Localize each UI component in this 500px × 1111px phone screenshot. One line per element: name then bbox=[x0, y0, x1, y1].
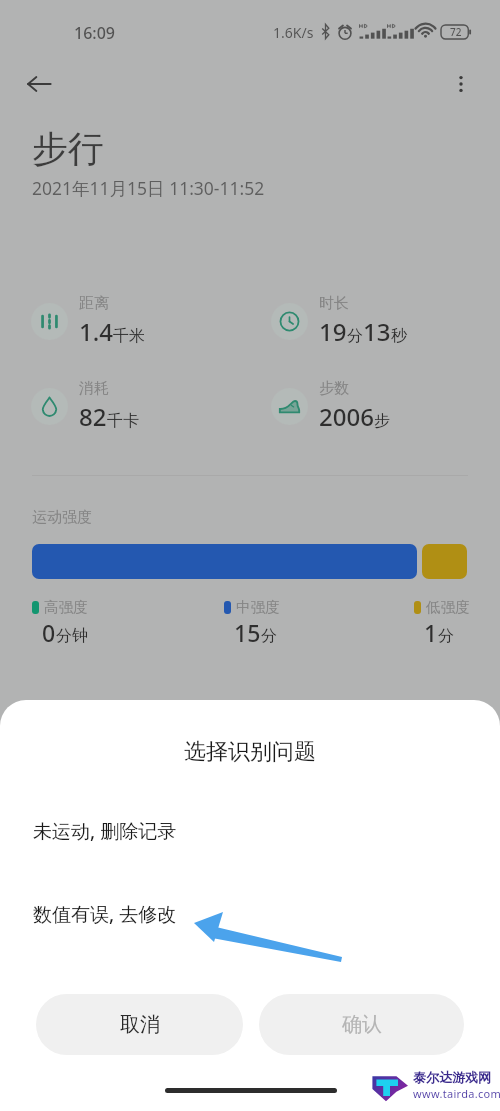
button[interactable]: 步数 bbox=[271, 379, 390, 433]
button[interactable]: 时长 bbox=[271, 294, 407, 348]
staticText: 19 bbox=[319, 315, 347, 348]
staticText: 72 bbox=[450, 25, 462, 39]
staticText: 2006 bbox=[319, 400, 374, 433]
button[interactable]: Back bbox=[16, 61, 62, 107]
staticText: 13 bbox=[363, 315, 391, 348]
staticText: 82 bbox=[79, 400, 107, 433]
staticText: 0 bbox=[42, 617, 56, 648]
staticText: 1.4 bbox=[79, 315, 113, 348]
staticText: 确认 bbox=[342, 1012, 382, 1037]
button[interactable]: 数值有误, 去修改 bbox=[0, 890, 500, 938]
staticText: 高强度 bbox=[44, 598, 88, 616]
staticText: 步 bbox=[374, 411, 390, 431]
staticText: 数值有误, 去修改 bbox=[33, 901, 177, 927]
staticText: 分 bbox=[261, 626, 277, 646]
staticText: 步行 bbox=[32, 126, 104, 171]
staticText: 时长 bbox=[319, 294, 349, 313]
staticText: 千米 bbox=[113, 326, 145, 346]
staticText: 距离 bbox=[79, 294, 109, 313]
staticText: 泰尔达游戏网 bbox=[413, 1069, 491, 1085]
button[interactable]: More options bbox=[438, 61, 484, 107]
button[interactable]: 距离 bbox=[31, 294, 145, 348]
staticText: 分 bbox=[347, 326, 363, 346]
button[interactable]: 取消 bbox=[36, 994, 243, 1055]
button[interactable]: 未运动, 删除记录 bbox=[0, 807, 500, 855]
staticText: 1 bbox=[424, 617, 438, 648]
staticText: 未运动, 删除记录 bbox=[33, 818, 177, 844]
staticText: 取消 bbox=[120, 1012, 160, 1037]
button[interactable]: 确认 bbox=[259, 994, 464, 1055]
staticText: 步数 bbox=[319, 379, 349, 398]
staticText: 16:09 bbox=[74, 22, 115, 44]
staticText: 中强度 bbox=[236, 598, 280, 616]
staticText: www.tairda.com bbox=[413, 1086, 500, 1101]
staticText: 选择识别问题 bbox=[0, 738, 500, 766]
staticText: 1.6K/s bbox=[273, 23, 314, 42]
staticText: 消耗 bbox=[79, 379, 109, 398]
staticText: 分钟 bbox=[56, 626, 88, 646]
staticText: 分 bbox=[438, 626, 454, 646]
button[interactable]: 消耗 bbox=[31, 379, 139, 433]
staticText: 千卡 bbox=[107, 411, 139, 431]
staticText: 2021年11月15日 11:30-11:52 bbox=[32, 176, 265, 200]
staticText: 秒 bbox=[391, 326, 407, 346]
staticText: 15 bbox=[234, 617, 261, 648]
staticText: 低强度 bbox=[426, 598, 470, 616]
staticText: 运动强度 bbox=[32, 508, 92, 527]
